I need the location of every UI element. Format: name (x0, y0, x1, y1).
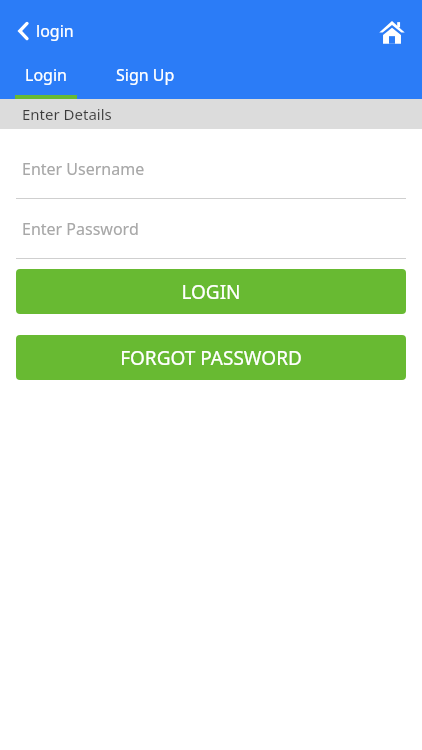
staticText: Enter Password (22, 218, 139, 240)
button[interactable]: LOGIN (16, 269, 406, 314)
staticText: Enter Details (22, 104, 112, 124)
button[interactable]: Home (370, 10, 414, 54)
button[interactable]: Sign Up (92, 64, 198, 99)
staticText: FORGOT PASSWORD (120, 345, 302, 371)
button[interactable]: login (14, 18, 78, 44)
staticText: Enter Username (22, 158, 145, 180)
staticText: LOGIN (181, 279, 241, 305)
staticText: Sign Up (116, 64, 175, 86)
staticText: Login (25, 64, 67, 86)
button[interactable]: Login (0, 64, 92, 99)
button[interactable]: Enter Username (16, 158, 406, 199)
button[interactable]: Enter Password (16, 218, 406, 259)
staticText: login (36, 20, 74, 42)
button[interactable]: FORGOT PASSWORD (16, 335, 406, 380)
